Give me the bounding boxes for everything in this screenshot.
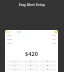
staticText: 4 — [14, 64, 16, 67]
staticText: 5 — [30, 64, 32, 67]
staticText: 6 — [47, 64, 49, 67]
staticText: 3 — [47, 60, 49, 63]
staticText: 2 — [30, 60, 32, 63]
button[interactable]: 4 — [7, 64, 22, 67]
button[interactable]: 8 — [23, 68, 39, 71]
button[interactable]: 7 — [7, 68, 22, 71]
button[interactable]: 3 — [40, 60, 56, 63]
button[interactable]: 9 — [40, 68, 56, 71]
staticText: 7 — [14, 68, 16, 71]
staticText: 1 — [14, 60, 16, 63]
staticText: $420 — [5, 50, 58, 58]
button[interactable]: 5 — [23, 64, 39, 67]
button[interactable]: 6 — [40, 64, 56, 67]
staticText: Easy Alert Setup — [0, 2, 64, 7]
staticText: 9 — [47, 68, 49, 71]
staticText: 8 — [30, 68, 32, 71]
button[interactable]: 1 — [7, 60, 22, 63]
button[interactable]: 2 — [23, 60, 39, 63]
